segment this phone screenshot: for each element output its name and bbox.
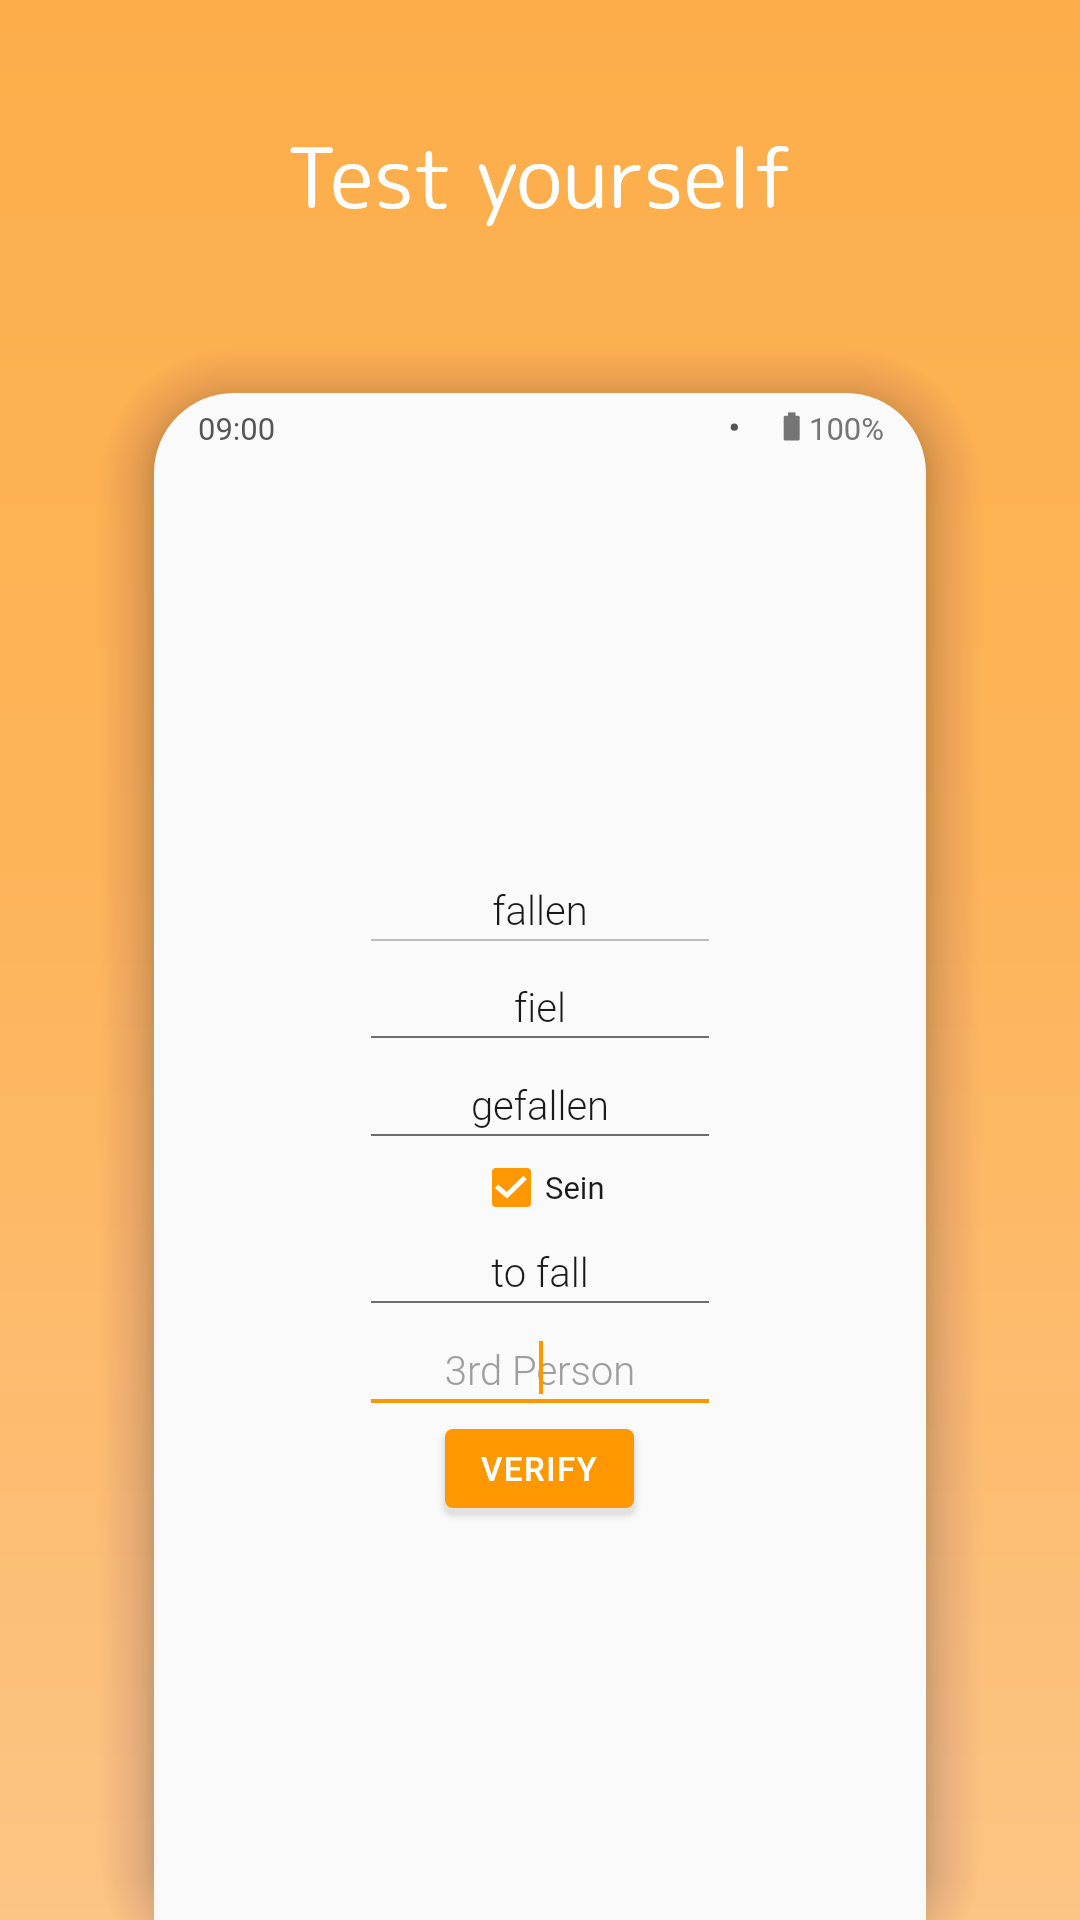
button[interactable]: fallen xyxy=(371,877,709,941)
staticText: fiel xyxy=(371,985,709,1032)
button[interactable]: gefallen xyxy=(371,1072,709,1136)
button[interactable]: to fall xyxy=(371,1239,709,1303)
button[interactable]: Sein xyxy=(492,1168,605,1207)
staticText: 100% xyxy=(809,411,884,447)
staticText: fallen xyxy=(371,888,709,935)
staticText: gefallen xyxy=(371,1083,709,1130)
staticText: Sein xyxy=(545,1170,605,1206)
button[interactable]: 3rd Person xyxy=(371,1337,709,1401)
staticText: to fall xyxy=(371,1250,709,1297)
other: Battery full xyxy=(714,403,914,463)
staticText: Test yourself xyxy=(0,120,1080,234)
staticText: 3rd Person xyxy=(371,1348,709,1395)
button[interactable]: fiel xyxy=(371,974,709,1038)
staticText: VERIFY xyxy=(481,1450,599,1489)
staticText: 09:00 xyxy=(198,411,276,447)
button[interactable]: VERIFY xyxy=(445,1429,634,1508)
